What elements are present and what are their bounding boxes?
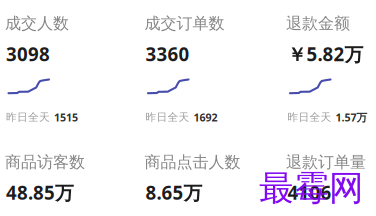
staticText: 昨日全天 (145, 111, 189, 124)
staticText: 成交订单数 (144, 13, 224, 33)
staticText: 退款金额 (286, 13, 350, 33)
staticText: 昨日全天 (287, 111, 331, 124)
staticText: 最霉网 (259, 167, 364, 210)
staticText: 1.57万 (335, 110, 367, 124)
staticText: 成交人数 (5, 13, 69, 33)
staticText: 1692 (193, 110, 217, 124)
staticText: 48.85万 (6, 180, 74, 205)
button[interactable]: 退款金额 (286, 13, 350, 33)
staticText: 1515 (54, 110, 78, 124)
button[interactable]: 成交订单数 (144, 13, 224, 33)
staticText: ￥5.82万 (287, 41, 363, 66)
staticText: 昨日全天 (6, 111, 50, 124)
button[interactable]: 商品点击人数 (144, 152, 240, 172)
staticText: 4106 (287, 180, 331, 205)
staticText: 商品点击人数 (144, 152, 240, 172)
button[interactable]: 商品访客数 (5, 152, 85, 172)
staticText: 退款订单量 (286, 152, 366, 172)
button[interactable]: 退款订单量 (286, 152, 366, 172)
staticText: 8.65万 (145, 180, 202, 205)
staticText: 3360 (145, 41, 189, 66)
staticText: 3098 (6, 41, 50, 66)
button[interactable]: 成交人数 (5, 13, 69, 33)
staticText: 商品访客数 (5, 152, 85, 172)
